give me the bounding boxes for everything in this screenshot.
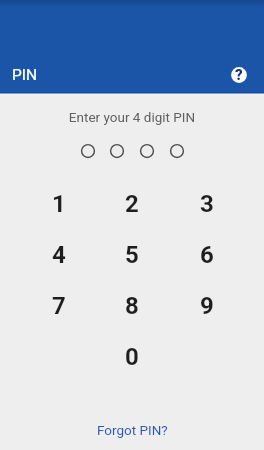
staticText: 3	[200, 190, 214, 218]
button[interactable]: 7	[27, 282, 91, 330]
button[interactable]: 8	[100, 282, 164, 330]
staticText: 0	[125, 343, 139, 371]
button[interactable]: Forgot PIN?	[86, 416, 178, 444]
staticText: Enter your 4 digit PIN	[0, 109, 264, 125]
staticText: 1	[52, 190, 66, 218]
button[interactable]: 1	[27, 180, 91, 228]
staticText: Forgot PIN?	[97, 422, 168, 438]
staticText: 4	[52, 241, 66, 269]
staticText: PIN	[12, 66, 38, 84]
button[interactable]: 4	[27, 231, 91, 279]
button[interactable]: 0	[100, 333, 164, 381]
button[interactable]: 5	[100, 231, 164, 279]
button[interactable]: 2	[100, 180, 164, 228]
staticText: ?	[235, 66, 243, 84]
staticText: 5	[125, 241, 139, 269]
staticText: 6	[200, 241, 214, 269]
staticText: 2	[125, 190, 139, 218]
button[interactable]: 3	[175, 180, 239, 228]
staticText: 7	[52, 292, 66, 320]
button[interactable]: 6	[175, 231, 239, 279]
button[interactable]: 9	[175, 282, 239, 330]
button[interactable]: Help	[226, 62, 252, 88]
staticText: 9	[200, 292, 214, 320]
staticText: 8	[125, 292, 139, 320]
